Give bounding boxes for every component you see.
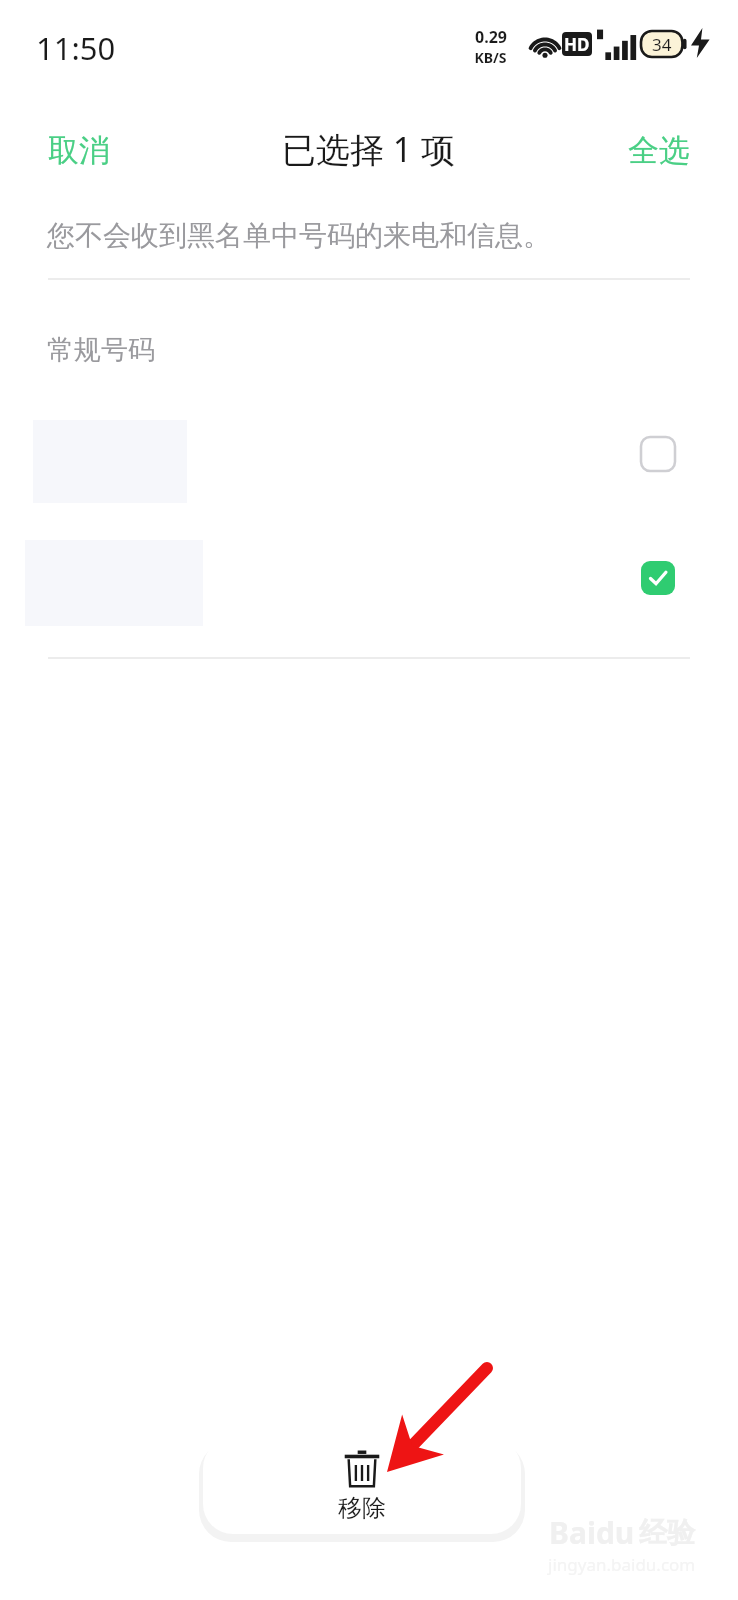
staticText: HD bbox=[564, 33, 590, 56]
staticText: Baidu bbox=[549, 1512, 635, 1553]
staticText: 您不会收到黑名单中号码的来电和信息。 bbox=[47, 218, 551, 253]
button[interactable]: 已选中 bbox=[626, 546, 690, 610]
staticText: 全选 bbox=[628, 131, 690, 170]
staticText: 11:50 bbox=[36, 27, 116, 69]
button[interactable]: 全选 bbox=[608, 119, 710, 182]
button[interactable]: 未选中 bbox=[626, 422, 690, 486]
staticText: 经验 bbox=[639, 1515, 695, 1550]
staticText: 取消 bbox=[48, 131, 110, 170]
staticText: jingyan.baidu.com bbox=[548, 1553, 696, 1576]
staticText: 0.29 bbox=[475, 26, 507, 48]
staticText: 常规号码 bbox=[47, 333, 155, 367]
button[interactable] bbox=[0, 520, 738, 640]
staticText: 已选择 1 项 bbox=[282, 126, 456, 172]
button[interactable] bbox=[0, 400, 738, 520]
staticText: KB/S bbox=[474, 48, 507, 67]
button[interactable]: 移除 bbox=[203, 1438, 521, 1534]
staticText: 移除 bbox=[338, 1493, 386, 1523]
button[interactable]: 取消 bbox=[28, 119, 130, 182]
staticText: 34 bbox=[652, 33, 672, 56]
